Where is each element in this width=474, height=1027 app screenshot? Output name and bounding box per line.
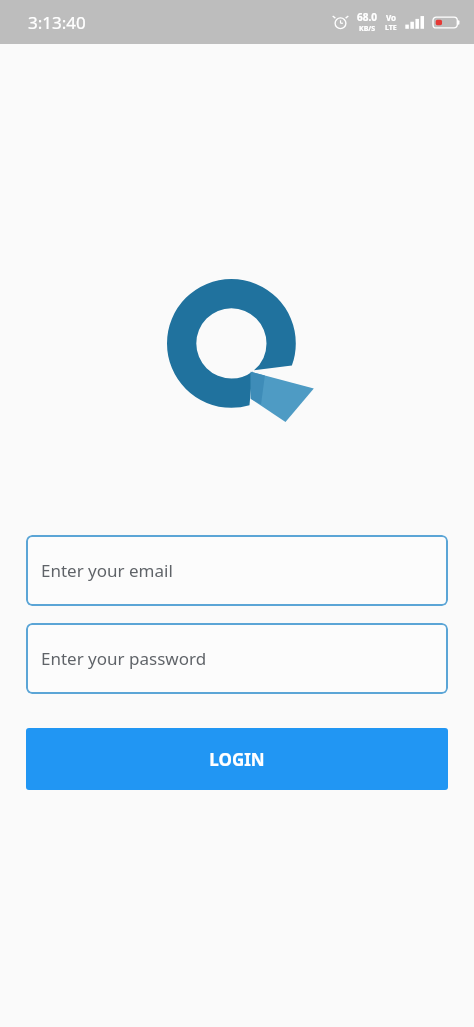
button[interactable]: Enter your email — [26, 535, 448, 606]
staticText: 3:13:40 — [28, 11, 86, 34]
staticText: Enter your email — [41, 559, 173, 582]
staticText: KB/S — [359, 24, 376, 34]
staticText: LTE — [385, 23, 397, 33]
button[interactable]: Enter your password — [26, 623, 448, 694]
staticText: Vo — [386, 12, 397, 23]
staticText: LOGIN — [209, 748, 265, 771]
staticText: 68.0 — [357, 10, 377, 24]
button[interactable]: LOGIN — [26, 728, 448, 790]
staticText: Enter your password — [41, 647, 207, 670]
